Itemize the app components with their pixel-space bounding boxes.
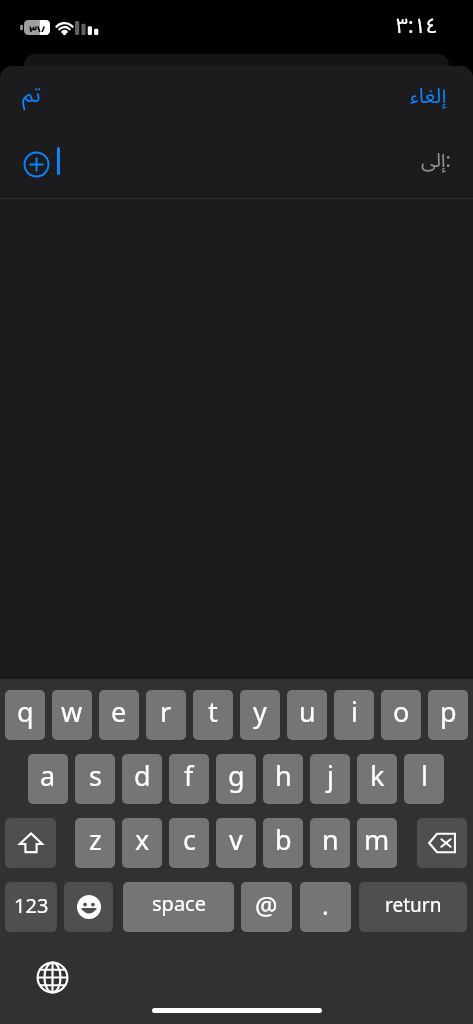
button[interactable]: v: [216, 818, 256, 868]
staticText: v: [229, 821, 243, 858]
staticText: t: [208, 693, 218, 730]
staticText: l: [421, 757, 428, 794]
button[interactable]: 123: [5, 882, 57, 932]
staticText: q: [17, 693, 34, 730]
button[interactable]: @: [241, 882, 292, 932]
staticText: 123: [14, 892, 49, 919]
staticText: تم: [22, 72, 41, 118]
staticText: إلغاء: [410, 74, 447, 118]
staticText: ٣:١٤: [396, 4, 438, 48]
button[interactable]: w: [52, 690, 92, 740]
button[interactable]: i: [334, 690, 374, 740]
staticText: u: [299, 693, 316, 730]
button[interactable]: q: [5, 690, 45, 740]
staticText: b: [275, 821, 292, 858]
staticText: n: [322, 821, 339, 858]
staticText: p: [440, 693, 457, 730]
button[interactable]: Shift: [5, 818, 56, 868]
button[interactable]: y: [240, 690, 280, 740]
staticText: z: [89, 821, 102, 858]
staticText: w: [61, 693, 83, 730]
button[interactable]: a: [28, 754, 68, 804]
staticText: f: [184, 757, 194, 794]
staticText: k: [370, 757, 385, 794]
button[interactable]: Add contact: [21, 149, 52, 180]
button[interactable]: u: [287, 690, 327, 740]
button[interactable]: l: [404, 754, 444, 804]
button[interactable]: g: [216, 754, 256, 804]
staticText: g: [228, 757, 245, 794]
staticText: y: [253, 693, 267, 730]
staticText: d: [134, 757, 151, 794]
staticText: ٣٧: [29, 17, 46, 32]
button[interactable]: n: [310, 818, 350, 868]
staticText: j: [327, 757, 334, 794]
button[interactable]: t: [193, 690, 233, 740]
button[interactable]: r: [146, 690, 186, 740]
button[interactable]: تم: [10, 66, 53, 126]
staticText: a: [40, 757, 56, 794]
button[interactable]: Switch keyboard language: [36, 961, 69, 994]
staticText: s: [89, 757, 102, 794]
button[interactable]: x: [122, 818, 162, 868]
staticText: return: [385, 892, 442, 918]
button[interactable]: b: [263, 818, 303, 868]
staticText: @: [255, 888, 278, 922]
button[interactable]: d: [122, 754, 162, 804]
staticText: r: [160, 693, 172, 730]
button[interactable]: h: [263, 754, 303, 804]
button[interactable]: p: [428, 690, 468, 740]
button[interactable]: e: [99, 690, 139, 740]
button[interactable]: k: [357, 754, 397, 804]
button[interactable]: o: [381, 690, 421, 740]
staticText: إلى:: [421, 140, 451, 182]
button[interactable]: .: [300, 882, 351, 932]
staticText: e: [111, 693, 127, 730]
staticText: space: [152, 890, 206, 917]
button[interactable]: z: [75, 818, 115, 868]
button[interactable]: c: [169, 818, 209, 868]
staticText: x: [135, 821, 150, 858]
staticText: .: [322, 888, 329, 922]
staticText: c: [183, 821, 196, 858]
staticText: i: [351, 693, 358, 730]
button[interactable]: Backspace: [417, 818, 467, 868]
button[interactable]: f: [169, 754, 209, 804]
button[interactable]: return: [359, 882, 467, 932]
button[interactable]: m: [357, 818, 397, 868]
button[interactable]: إلغاء: [398, 66, 459, 126]
button[interactable]: j: [310, 754, 350, 804]
staticText: h: [275, 757, 292, 794]
staticText: o: [393, 693, 410, 730]
button[interactable]: space: [123, 882, 234, 932]
button[interactable]: s: [75, 754, 115, 804]
staticText: m: [364, 821, 390, 858]
button[interactable]: Emoji: [64, 882, 113, 932]
